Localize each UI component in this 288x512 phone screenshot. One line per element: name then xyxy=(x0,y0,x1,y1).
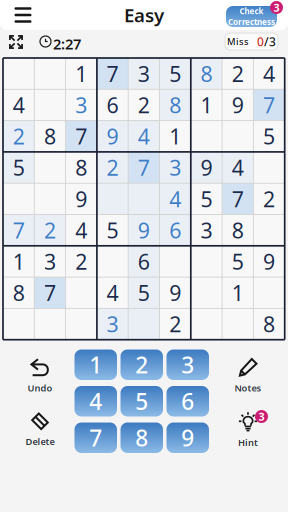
staticText: Correctness xyxy=(228,16,275,27)
staticText: 7 xyxy=(106,59,118,88)
staticText: Hint xyxy=(238,436,258,449)
staticText: 1 xyxy=(89,350,102,380)
staticText: 1 xyxy=(13,247,25,276)
staticText: 3 xyxy=(75,91,87,119)
staticText: Notes xyxy=(234,382,261,394)
button[interactable]: Fullscreen xyxy=(8,34,24,50)
button[interactable]: 7 xyxy=(74,422,117,453)
button[interactable]: Undo xyxy=(18,359,62,393)
staticText: Easy xyxy=(124,3,164,27)
staticText: 3 xyxy=(44,247,56,276)
staticText: 1 xyxy=(200,91,212,119)
staticText: 6 xyxy=(138,247,150,276)
staticText: 4 xyxy=(75,216,87,244)
staticText: 6 xyxy=(181,386,194,416)
staticText: 8 xyxy=(13,279,25,307)
staticText: 5 xyxy=(232,247,244,276)
button[interactable]: 3 xyxy=(166,349,209,380)
button[interactable]: 9 xyxy=(166,422,209,453)
staticText: 4 xyxy=(138,122,150,150)
button[interactable]: 6 xyxy=(166,386,209,416)
staticText: 9 xyxy=(232,91,244,119)
staticText: 4 xyxy=(89,386,102,416)
staticText: 1 xyxy=(75,59,87,88)
button[interactable]: Delete xyxy=(18,413,62,447)
staticText: Miss xyxy=(227,35,249,48)
button[interactable]: Miss xyxy=(225,33,278,50)
button[interactable]: Menu xyxy=(8,2,38,28)
staticText: 9 xyxy=(263,247,275,276)
staticText: 3 xyxy=(106,310,118,338)
staticText: 1 xyxy=(169,122,181,150)
staticText: 5 xyxy=(263,122,275,150)
staticText: 2 xyxy=(75,247,87,276)
staticText: 2 xyxy=(263,185,275,213)
staticText: 2 xyxy=(138,91,150,119)
staticText: 8 xyxy=(200,59,212,88)
staticText: 5 xyxy=(200,185,212,213)
staticText: 7 xyxy=(13,216,25,244)
button[interactable]: Check xyxy=(226,1,283,28)
button[interactable]: Hint xyxy=(226,413,270,447)
staticText: 8 xyxy=(75,153,87,182)
staticText: 7 xyxy=(89,423,102,453)
staticText: 4 xyxy=(13,91,25,119)
staticText: 3 xyxy=(273,0,279,15)
staticText: 5 xyxy=(138,279,150,307)
staticText: 5 xyxy=(135,386,148,416)
staticText: 2 xyxy=(13,122,25,150)
button[interactable]: 1 xyxy=(74,349,117,380)
staticText: 7 xyxy=(138,153,150,182)
staticText: 8 xyxy=(232,216,244,244)
button[interactable]: 2 xyxy=(120,349,163,380)
button[interactable]: 4 xyxy=(74,386,117,416)
staticText: Delete xyxy=(25,435,54,448)
staticText: 9 xyxy=(138,216,150,244)
staticText: 2 xyxy=(135,350,148,380)
button[interactable]: 8 xyxy=(120,422,163,453)
staticText: 9 xyxy=(75,185,87,213)
staticText: 4 xyxy=(232,153,244,182)
staticText: 8 xyxy=(263,310,275,338)
staticText: 2 xyxy=(169,310,181,338)
button[interactable]: Notes xyxy=(226,359,270,393)
button[interactable]: 5 xyxy=(120,386,163,416)
staticText: 2 xyxy=(106,153,118,182)
staticText: 1 xyxy=(232,279,244,307)
staticText: 7 xyxy=(232,185,244,213)
staticText: 3 xyxy=(169,153,181,182)
staticText: 8 xyxy=(44,122,56,150)
staticText: 7 xyxy=(44,279,56,307)
staticText: 3 xyxy=(200,216,212,244)
staticText: 2:27 xyxy=(53,34,81,53)
staticText: 9 xyxy=(181,423,194,453)
staticText: 9 xyxy=(106,122,118,150)
staticText: 7 xyxy=(263,91,275,119)
staticText: 5 xyxy=(106,216,118,244)
staticText: 3 xyxy=(258,409,264,424)
staticText: 5 xyxy=(169,59,181,88)
staticText: Check xyxy=(239,6,263,16)
staticText: Undo xyxy=(27,382,52,394)
